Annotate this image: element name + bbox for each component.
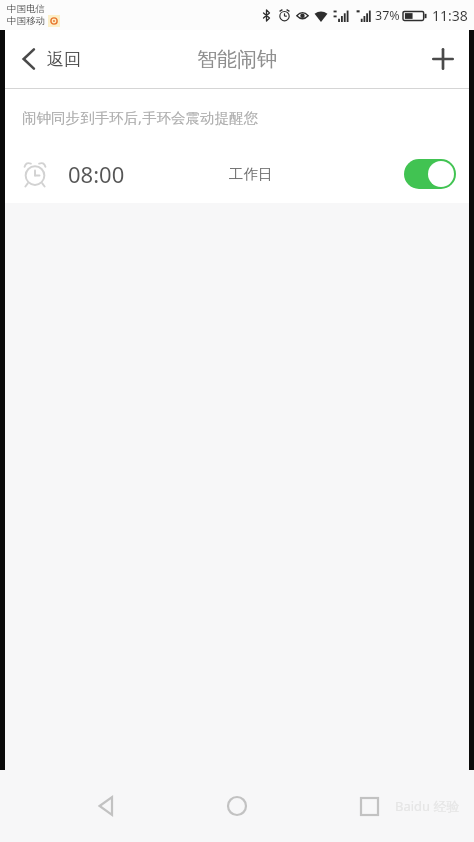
button[interactable]: 最近任务: [343, 780, 395, 832]
staticText: 中国移动: [7, 15, 45, 27]
button[interactable]: 闹钟开关: [404, 159, 456, 189]
staticText: 返回: [47, 49, 81, 70]
button[interactable]: 08:00: [0, 145, 474, 203]
staticText: 智能闹钟: [197, 47, 277, 72]
staticText: 11:38: [432, 6, 468, 25]
staticText: 08:00: [68, 159, 125, 189]
button[interactable]: 返回: [80, 780, 132, 832]
button[interactable]: 返回: [0, 37, 97, 81]
button[interactable]: 添加闹钟: [412, 36, 474, 82]
staticText: Baidu 经验: [395, 797, 460, 815]
button[interactable]: 主页: [211, 780, 263, 832]
staticText: 37%: [375, 7, 400, 24]
staticText: 工作日: [229, 165, 273, 183]
staticText: 中国电信: [7, 3, 45, 15]
staticText: 闹钟同步到手环后,手环会震动提醒您: [22, 107, 258, 127]
